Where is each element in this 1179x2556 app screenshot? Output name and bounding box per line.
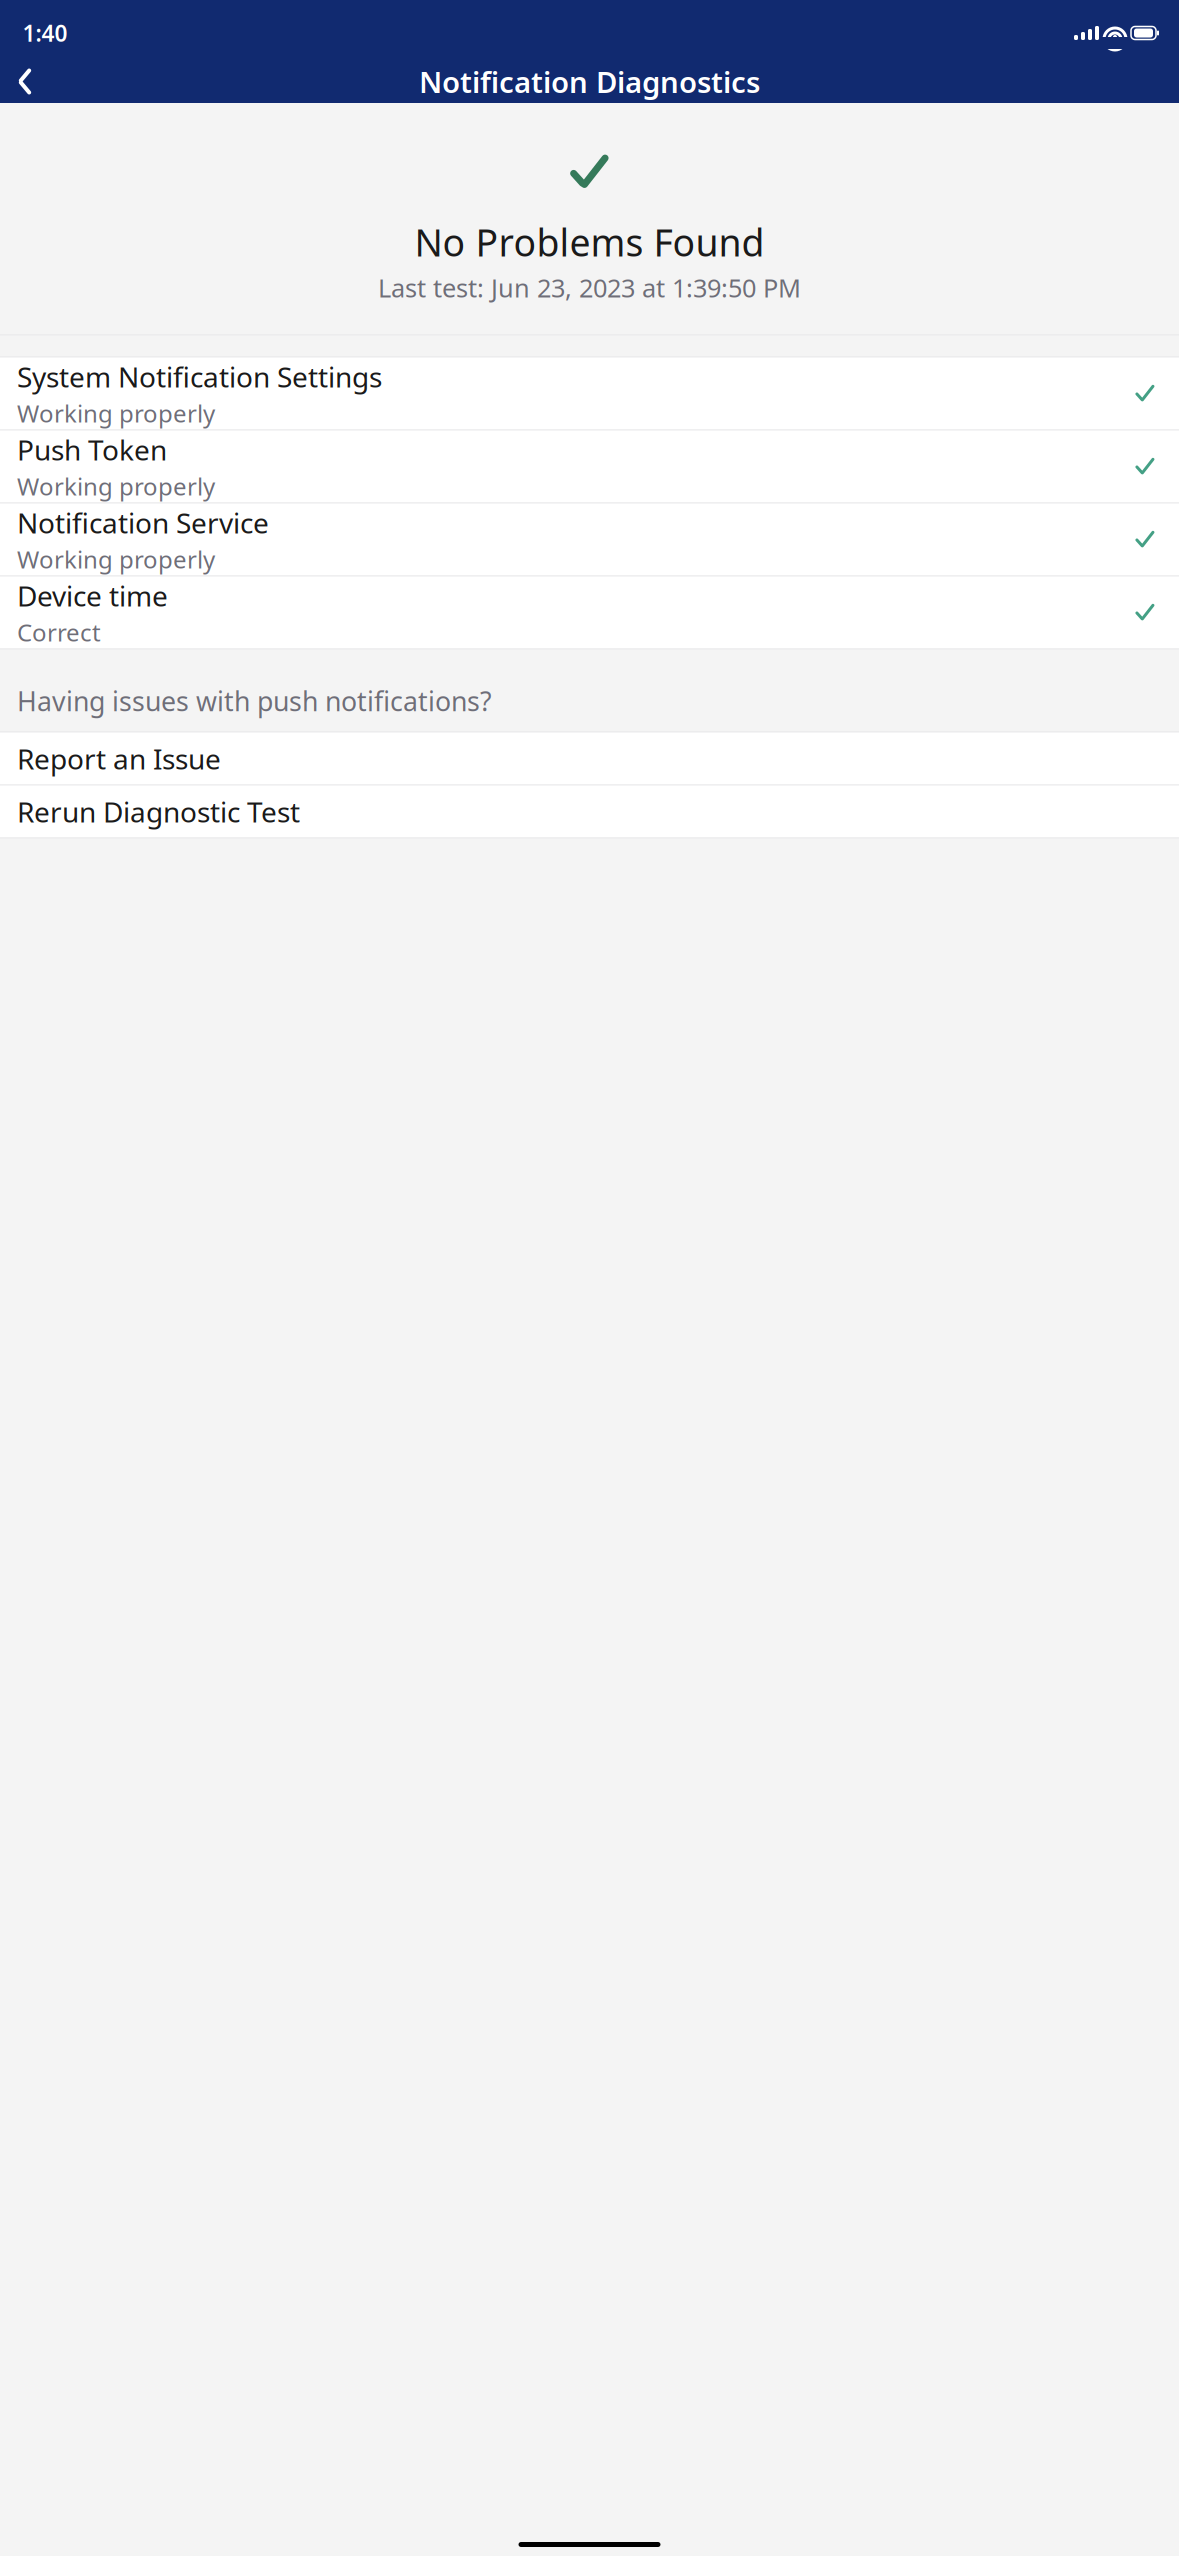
staticText: System Notification Settings (17, 358, 382, 395)
staticText: Device time (17, 577, 168, 614)
staticText: No Problems Found (414, 217, 764, 267)
staticText: Working properly (17, 470, 215, 502)
staticText: Push Token (17, 431, 167, 468)
staticText: Correct (17, 616, 101, 648)
button[interactable]: Back (0, 59, 50, 103)
staticText: Working properly (17, 397, 215, 429)
staticText: Notification Diagnostics (419, 62, 760, 101)
button[interactable]: Device time (0, 576, 1179, 648)
staticText: Having issues with push notifications? (17, 683, 492, 718)
staticText: Last test: Jun 23, 2023 at 1:39:50 PM (378, 271, 801, 304)
button[interactable]: System Notification Settings (0, 357, 1179, 429)
button[interactable]: Rerun Diagnostic Test (0, 785, 1179, 837)
staticText: Working properly (17, 543, 215, 575)
button[interactable]: Report an Issue (0, 732, 1179, 784)
button[interactable]: Push Token (0, 430, 1179, 502)
staticText: 1:40 (22, 18, 67, 48)
button[interactable]: Notification Service (0, 503, 1179, 575)
staticText: Rerun Diagnostic Test (17, 793, 300, 830)
staticText: Report an Issue (17, 740, 221, 777)
staticText: Notification Service (17, 504, 269, 541)
